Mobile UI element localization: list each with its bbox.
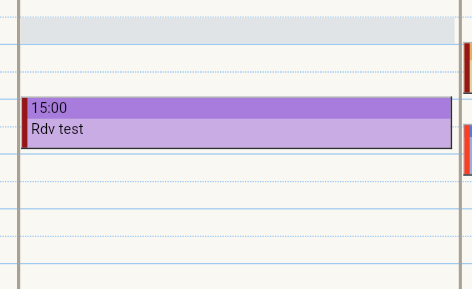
button[interactable]: Event xyxy=(463,124,472,176)
button[interactable]: 15:00 xyxy=(21,96,452,149)
staticText: 15:00 xyxy=(31,100,68,117)
staticText: Rdv test xyxy=(31,121,84,138)
button[interactable]: Event xyxy=(463,42,472,94)
